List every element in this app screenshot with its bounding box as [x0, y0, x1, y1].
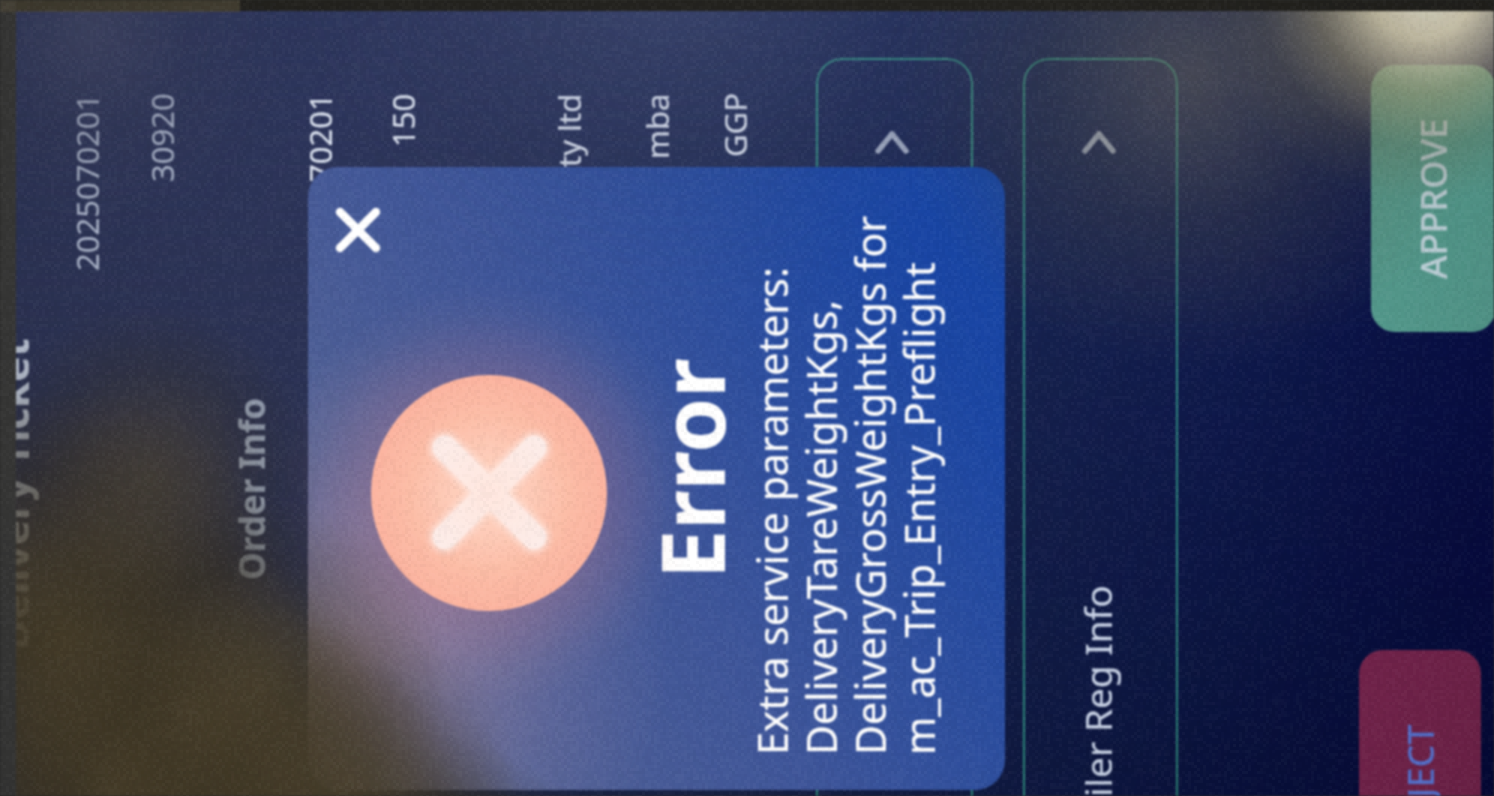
staticText: Extra service parameters:	[744, 267, 800, 755]
staticText: Trailer Reg Info	[1072, 585, 1122, 796]
staticText: 2025070201	[66, 93, 108, 271]
other: Collapse section	[1074, 115, 1124, 165]
staticText: Order Info	[228, 397, 276, 580]
button[interactable]: REJECT	[1359, 650, 1481, 796]
staticText: Delivery Ticket	[0, 338, 41, 650]
staticText: 150	[382, 93, 424, 147]
button[interactable]: APPROVE	[1371, 65, 1494, 332]
other: Collapse section	[867, 115, 917, 165]
staticText: DeliveryGrossWeightKgs for	[842, 215, 898, 755]
staticText: 70201	[299, 93, 341, 182]
button[interactable]: Close	[328, 200, 388, 260]
staticText: GGP	[714, 93, 756, 157]
button[interactable]: Collapse section	[816, 58, 973, 796]
staticText: DeliveryTareWeightKgs,	[793, 299, 849, 755]
staticText: REJECT	[1396, 724, 1445, 796]
staticText: Error	[631, 358, 751, 579]
staticText: mba	[636, 93, 678, 159]
button[interactable]: Collapse section	[1023, 58, 1178, 796]
staticText: 30920	[141, 93, 183, 182]
staticText: APPROVE	[1409, 118, 1458, 279]
staticText: m_ac_Trip_Entry_Preflight	[891, 262, 947, 755]
staticText: ty ltd	[548, 93, 590, 167]
